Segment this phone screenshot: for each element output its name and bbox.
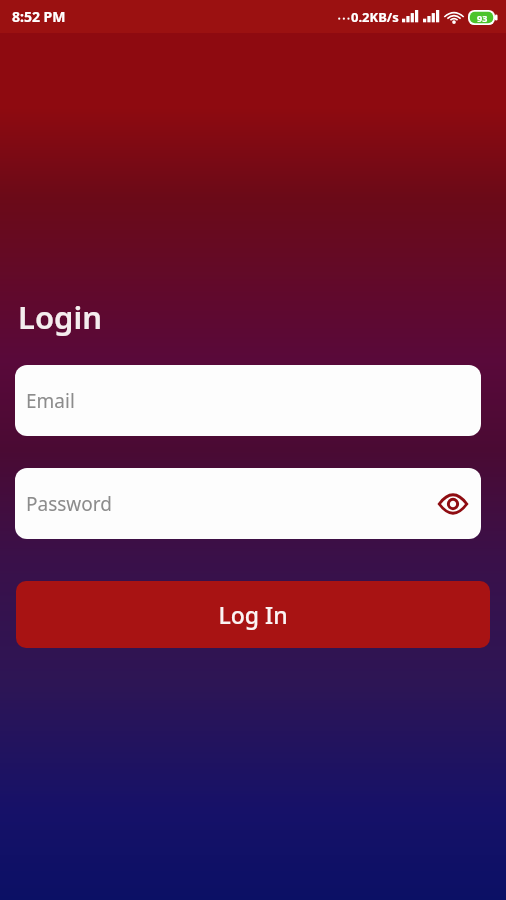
button[interactable]: Show password xyxy=(433,484,473,524)
button[interactable]: Email xyxy=(15,365,481,436)
staticText: Email xyxy=(26,388,75,414)
staticText: 93 xyxy=(477,12,488,24)
staticText: Password xyxy=(26,491,112,517)
staticText: 0.2KB/s xyxy=(351,8,399,26)
staticText: Log In xyxy=(218,599,288,630)
staticText: Login xyxy=(18,296,103,338)
staticText: 8:52 PM xyxy=(12,7,66,26)
button[interactable]: Password xyxy=(15,468,481,539)
button[interactable]: Log In xyxy=(16,581,490,648)
